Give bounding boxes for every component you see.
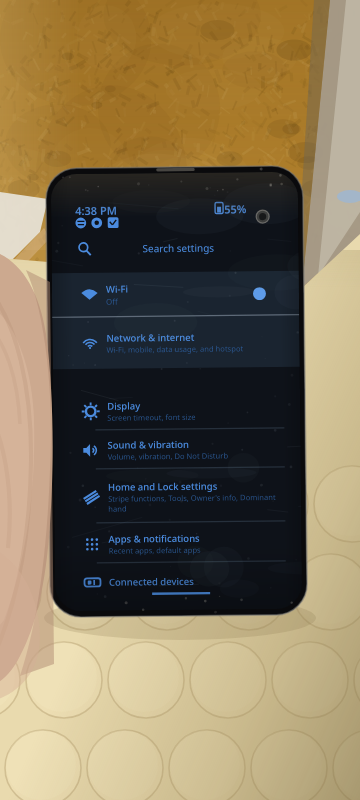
staticText: Display [107,399,141,413]
other: Search [77,242,91,256]
button[interactable]: Connected devices [55,562,302,601]
button[interactable]: Home and Lock settings [54,468,301,524]
button[interactable]: Network & internet [52,316,300,369]
staticText: Stripe functions, Tools, Owner's info, D… [108,492,280,514]
staticText: Network & internet [106,331,194,345]
staticText: Home and Lock settings [108,480,218,494]
staticText: 4:38 PM [75,203,117,218]
staticText: Screen timeout, font size [107,412,196,423]
button[interactable]: Search [51,232,299,264]
staticText: 55% [224,201,247,216]
staticText: Sound & vibration [107,438,190,452]
button[interactable]: Apps & notifications [54,522,302,564]
staticText: Wi-Fi [106,282,129,296]
staticText: Recent apps, default apps [109,545,202,556]
staticText: Search settings [142,241,214,255]
button[interactable]: Sound & vibration [53,429,301,470]
staticText: Wi-Fi, mobile, data usage, and hotspot [106,343,244,355]
staticText: Volume, vibration, Do Not Disturb [108,450,229,462]
staticText: Off [106,296,118,307]
staticText: Connected devices [109,575,194,589]
staticText: Apps & notifications [108,532,201,546]
button[interactable]: Wi-Fi toggle [253,287,266,300]
button[interactable]: Wi-Fi [52,271,299,317]
button[interactable]: Display [53,389,300,431]
